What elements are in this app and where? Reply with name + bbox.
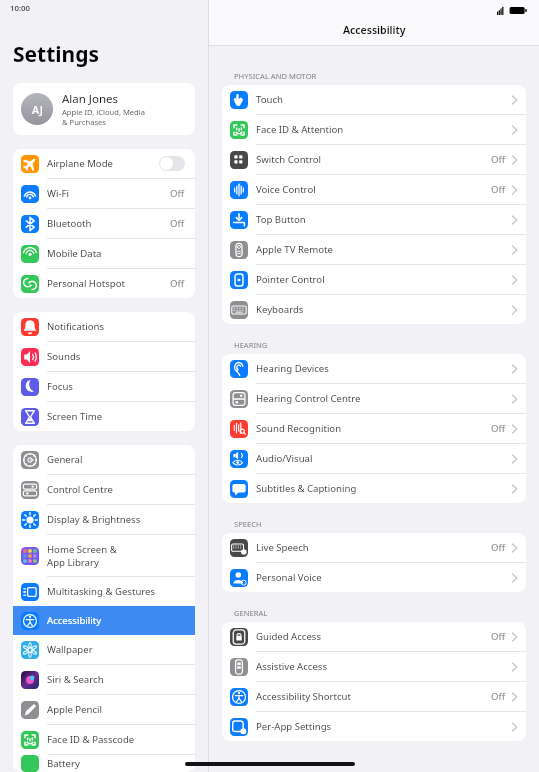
button[interactable]: General xyxy=(13,445,195,474)
staticText: Face ID & Attention xyxy=(256,123,344,136)
staticText: AJ xyxy=(32,102,43,117)
button[interactable]: Guided Access xyxy=(222,622,526,651)
button[interactable]: Audio/Visual xyxy=(222,444,526,473)
staticText: Subtitles & Captioning xyxy=(256,482,357,495)
staticText: Off xyxy=(491,630,506,643)
other: Home indicator xyxy=(185,762,355,766)
button[interactable]: Face ID & Attention xyxy=(222,115,526,144)
staticText: Accessibility Shortcut xyxy=(256,690,352,703)
staticText: & Purchases xyxy=(62,117,106,127)
staticText: Off xyxy=(491,690,506,703)
button[interactable]: Personal Voice xyxy=(222,563,526,592)
staticText: Airplane Mode xyxy=(47,157,113,170)
staticText: Per-App Settings xyxy=(256,720,332,733)
button[interactable]: Per-App Settings xyxy=(222,712,526,741)
button[interactable]: AJ xyxy=(13,83,195,135)
staticText: Accessibility xyxy=(343,23,406,37)
button[interactable] xyxy=(159,156,185,171)
staticText: Sounds xyxy=(47,350,81,363)
button[interactable]: Siri & Search xyxy=(13,665,195,694)
staticText: Focus xyxy=(47,380,73,393)
staticText: Pointer Control xyxy=(256,273,325,286)
button[interactable]: Live Speech xyxy=(222,533,526,562)
button[interactable]: Subtitles & Captioning xyxy=(222,474,526,503)
staticText: Wallpaper xyxy=(47,643,93,656)
staticText: Off xyxy=(491,183,506,196)
button[interactable]: Display & Brightness xyxy=(13,505,195,534)
staticText: Display & Brightness xyxy=(47,513,141,526)
button[interactable]: Top Button xyxy=(222,205,526,234)
button[interactable]: Airplane Mode xyxy=(13,149,195,178)
button[interactable]: Assistive Access xyxy=(222,652,526,681)
button[interactable]: Battery xyxy=(13,755,195,772)
button[interactable]: Accessibility xyxy=(13,606,195,635)
staticText: Screen Time xyxy=(47,410,103,423)
staticText: Switch Control xyxy=(256,153,322,166)
staticText: Off xyxy=(170,217,185,230)
staticText: Accessibility xyxy=(47,614,102,627)
button[interactable]: Apple Pencil xyxy=(13,695,195,724)
button[interactable]: Focus xyxy=(13,372,195,401)
button[interactable]: Switch Control xyxy=(222,145,526,174)
button[interactable]: Touch xyxy=(222,85,526,114)
staticText: PHYSICAL AND MOTOR xyxy=(234,71,317,81)
button[interactable]: Home Screen & xyxy=(13,535,195,576)
staticText: Mobile Data xyxy=(47,247,102,260)
staticText: SPEECH xyxy=(234,519,262,529)
staticText: Audio/Visual xyxy=(256,452,313,465)
staticText: Off xyxy=(170,277,185,290)
button[interactable]: Sounds xyxy=(13,342,195,371)
staticText: Home Screen & xyxy=(47,543,117,556)
staticText: Personal Hotspot xyxy=(47,277,125,290)
staticText: Hearing Devices xyxy=(256,362,329,375)
button[interactable]: Accessibility Shortcut xyxy=(222,682,526,711)
button[interactable]: Voice Control xyxy=(222,175,526,204)
staticText: Sound Recognition xyxy=(256,422,342,435)
staticText: Guided Access xyxy=(256,630,322,643)
staticText: Apple Pencil xyxy=(47,703,103,716)
staticText: GENERAL xyxy=(234,608,268,618)
staticText: Off xyxy=(170,187,185,200)
staticText: Keyboards xyxy=(256,303,304,316)
staticText: Bluetooth xyxy=(47,217,92,230)
staticText: HEARING xyxy=(234,340,268,350)
button[interactable]: Keyboards xyxy=(222,295,526,324)
staticText: Off xyxy=(491,541,506,554)
staticText: Voice Control xyxy=(256,183,316,196)
button[interactable]: Wallpaper xyxy=(13,635,195,664)
staticText: Multitasking & Gestures xyxy=(47,585,156,598)
button[interactable]: Mobile Data xyxy=(13,239,195,268)
button[interactable]: Pointer Control xyxy=(222,265,526,294)
button[interactable]: Hearing Devices xyxy=(222,354,526,383)
button[interactable]: Hearing Control Centre xyxy=(222,384,526,413)
staticText: Live Speech xyxy=(256,541,309,554)
staticText: Wi-Fi xyxy=(47,187,69,200)
staticText: Face ID & Passcode xyxy=(47,733,135,746)
staticText: Off xyxy=(491,153,506,166)
button[interactable]: Face ID & Passcode xyxy=(13,725,195,754)
staticText: Off xyxy=(491,422,506,435)
button[interactable]: Bluetooth xyxy=(13,209,195,238)
staticText: Personal Voice xyxy=(256,571,322,584)
button[interactable]: Wi-Fi xyxy=(13,179,195,208)
staticText: Siri & Search xyxy=(47,673,104,686)
staticText: Touch xyxy=(256,93,283,106)
button[interactable]: Control Centre xyxy=(13,475,195,504)
button[interactable]: Sound Recognition xyxy=(222,414,526,443)
button[interactable]: Apple TV Remote xyxy=(222,235,526,264)
staticText: General xyxy=(47,453,83,466)
staticText: Settings xyxy=(13,40,100,69)
staticText: Battery xyxy=(47,757,80,770)
button[interactable]: Screen Time xyxy=(13,402,195,431)
staticText: Apple TV Remote xyxy=(256,243,333,256)
staticText: App Library xyxy=(47,556,99,569)
staticText: Control Centre xyxy=(47,483,113,496)
staticText: Alan Jones xyxy=(62,91,119,107)
button[interactable]: Personal Hotspot xyxy=(13,269,195,298)
button[interactable]: Notifications xyxy=(13,312,195,341)
staticText: Assistive Access xyxy=(256,660,328,673)
staticText: 10:00 xyxy=(10,3,30,14)
staticText: Hearing Control Centre xyxy=(256,392,361,405)
staticText: Apple ID, iCloud, Media xyxy=(62,107,145,117)
button[interactable]: Multitasking & Gestures xyxy=(13,577,195,606)
